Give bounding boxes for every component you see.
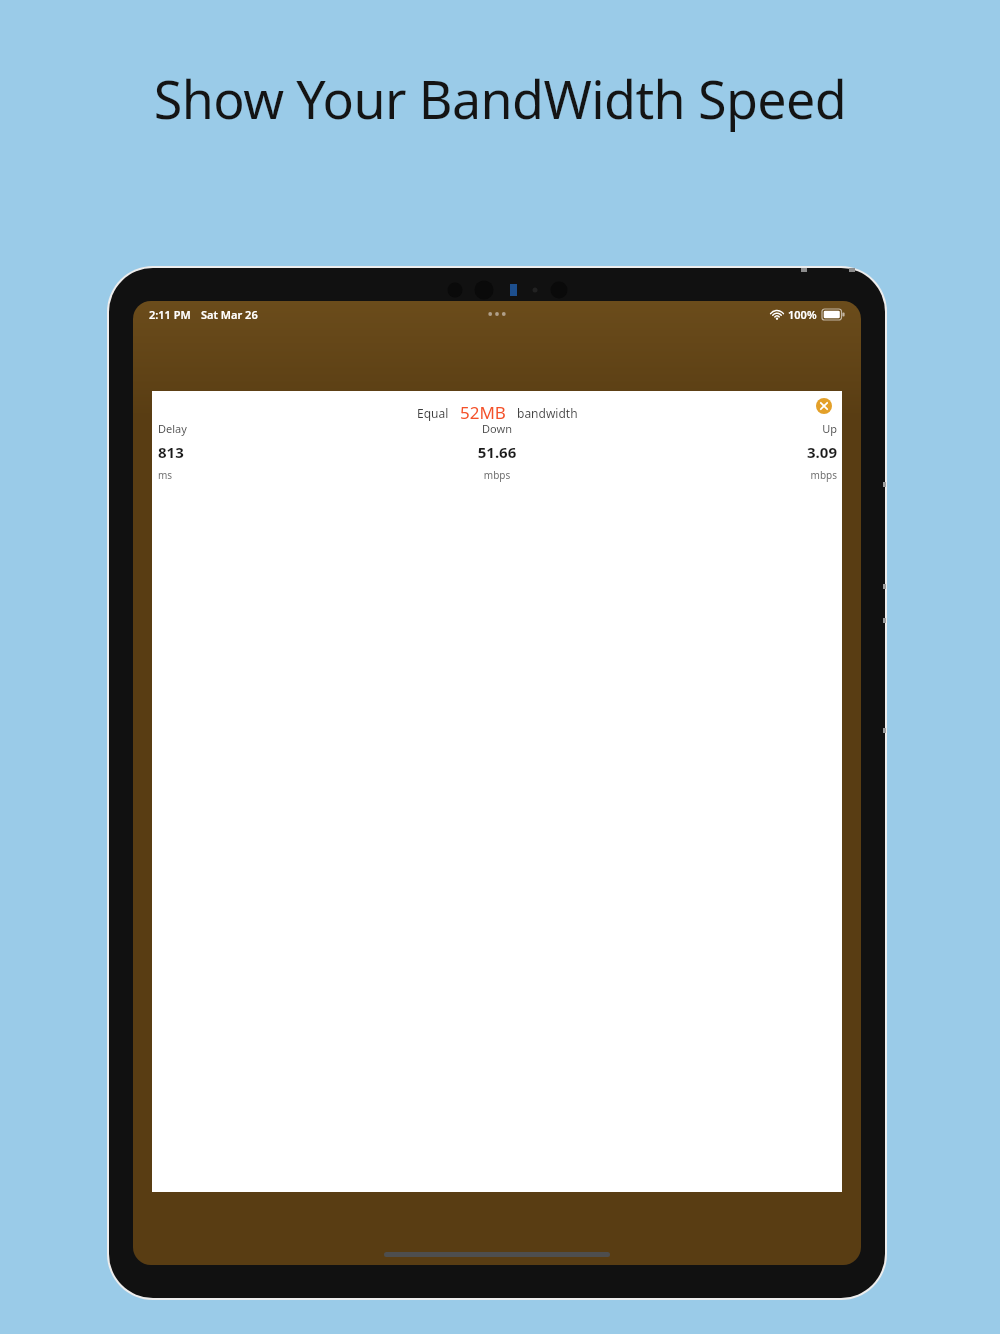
button[interactable]: Close: [813, 395, 835, 417]
staticText: 2:11 PM: [149, 307, 191, 322]
button[interactable]: Delay: [158, 421, 308, 482]
button[interactable]: Up: [687, 421, 837, 482]
staticText: Delay: [158, 421, 308, 436]
staticText: mbps: [407, 468, 587, 482]
staticText: 100%: [788, 307, 817, 322]
staticText: mbps: [687, 468, 837, 482]
staticText: Sat Mar 26: [201, 307, 258, 322]
staticText: 3.09: [687, 442, 837, 462]
button[interactable]: Down: [407, 421, 587, 482]
staticText: 52MB: [460, 401, 506, 424]
staticText: Up: [687, 421, 837, 436]
staticText: ms: [158, 468, 308, 482]
staticText: Equal: [417, 405, 449, 421]
staticText: 813: [158, 442, 308, 462]
staticText: 51.66: [407, 442, 587, 462]
staticText: Down: [407, 421, 587, 436]
staticText: bandwidth: [517, 405, 578, 421]
staticText: Show Your BandWidth Speed: [0, 63, 1000, 134]
button[interactable]: Equal: [417, 401, 578, 424]
